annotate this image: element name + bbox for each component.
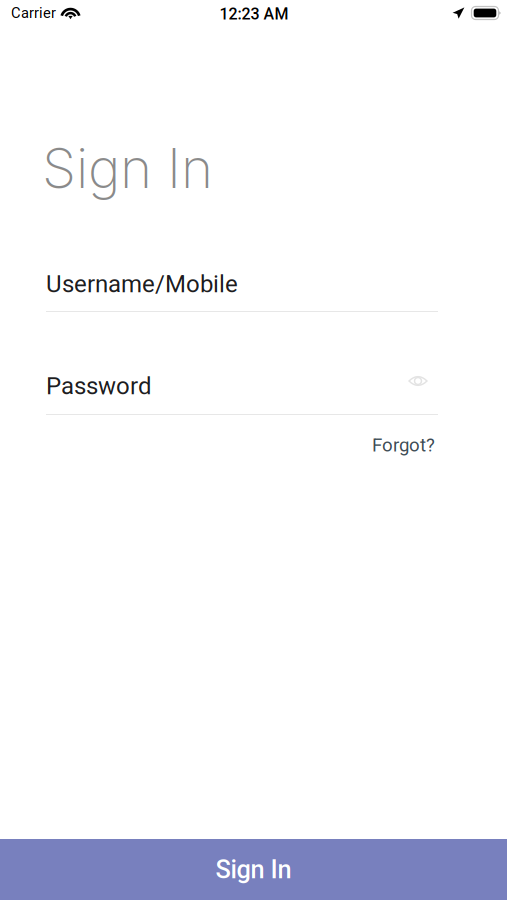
staticText: Sign In (42, 135, 213, 201)
button[interactable]: Forgot? (335, 433, 435, 457)
staticText: Username/Mobile (46, 270, 238, 298)
staticText: Sign In (215, 855, 291, 884)
staticText: Forgot? (372, 434, 435, 456)
button[interactable]: Show password (403, 366, 433, 396)
staticText: 12:23 AM (219, 5, 288, 23)
staticText: Carrier (11, 4, 56, 22)
button[interactable]: Sign In (0, 839, 507, 900)
staticText: Password (46, 372, 152, 400)
